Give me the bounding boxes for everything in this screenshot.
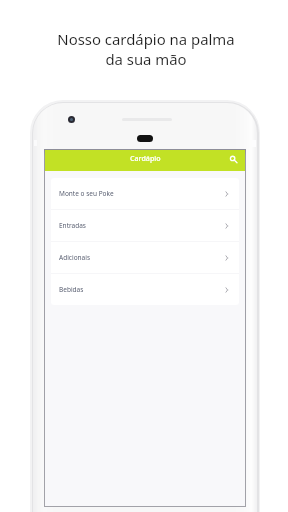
button[interactable]: Adicionais (51, 242, 239, 273)
button[interactable]: Entradas (51, 210, 239, 241)
button[interactable]: Bebidas (51, 274, 239, 305)
button[interactable]: Search (225, 151, 241, 167)
button[interactable]: Monte o seu Poke (51, 178, 239, 209)
staticText: Nosso cardápio na palma da sua mão (2, 29, 288, 69)
staticText: Entradas (59, 221, 86, 230)
staticText: Adicionais (59, 253, 91, 262)
staticText: Cardápio (130, 153, 161, 163)
staticText: Monte o seu Poke (59, 189, 114, 198)
staticText: Bebidas (59, 285, 84, 294)
